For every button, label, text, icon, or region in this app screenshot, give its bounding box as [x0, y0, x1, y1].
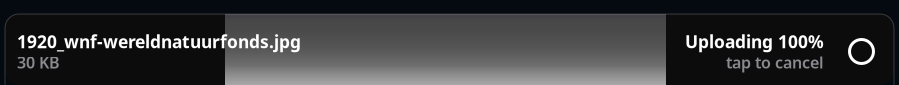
staticText: tap to cancel: [726, 52, 824, 73]
staticText: 30 KB: [17, 52, 60, 73]
staticText: 1920_wnf-wereldnatuurfonds.jpg: [17, 30, 301, 53]
staticText: Uploading 100%: [685, 30, 824, 53]
button[interactable]: Uploading 100%: [685, 30, 875, 73]
